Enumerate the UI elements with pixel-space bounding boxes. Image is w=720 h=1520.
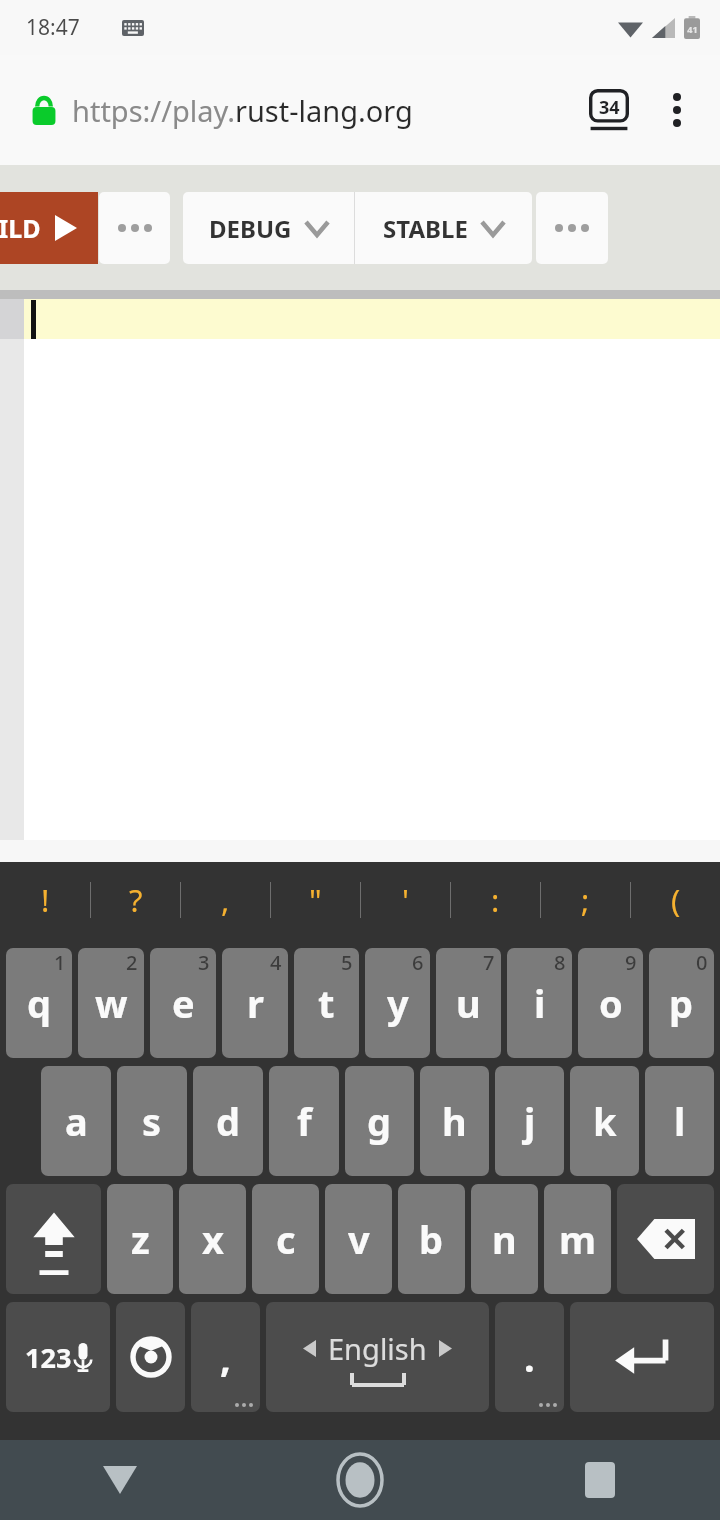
staticText: u bbox=[456, 977, 481, 1029]
button[interactable]: v bbox=[325, 1184, 392, 1294]
staticText: x bbox=[202, 1213, 224, 1265]
staticText: d bbox=[216, 1095, 241, 1147]
staticText: 8 bbox=[554, 949, 566, 976]
button[interactable]: : bbox=[451, 862, 540, 938]
button[interactable]: b bbox=[398, 1184, 465, 1294]
button[interactable]: ' bbox=[361, 862, 450, 938]
button[interactable]: i bbox=[507, 948, 572, 1058]
button[interactable]: g bbox=[345, 1066, 414, 1176]
staticText: 6 bbox=[412, 949, 424, 976]
staticText: e bbox=[172, 977, 195, 1029]
staticText: v bbox=[348, 1213, 370, 1265]
staticText: 7 bbox=[483, 949, 495, 976]
staticText: : bbox=[491, 879, 500, 921]
button[interactable]: Space, English bbox=[266, 1302, 489, 1412]
button[interactable]: z bbox=[107, 1184, 173, 1294]
staticText: . bbox=[524, 1331, 535, 1383]
button[interactable]: h bbox=[420, 1066, 489, 1176]
staticText: 123 bbox=[25, 1339, 72, 1376]
staticText: 4 bbox=[270, 949, 282, 976]
staticText: z bbox=[131, 1213, 150, 1265]
staticText: i bbox=[534, 977, 546, 1029]
staticText: STABLE bbox=[383, 212, 468, 245]
staticText: a bbox=[65, 1095, 88, 1147]
staticText: 9 bbox=[625, 949, 637, 976]
button[interactable]: a bbox=[41, 1066, 111, 1176]
button[interactable]: Emoji bbox=[116, 1302, 185, 1412]
staticText: 18:47 bbox=[26, 13, 80, 42]
staticText: ' bbox=[402, 879, 409, 921]
staticText: g bbox=[367, 1095, 392, 1147]
button[interactable]: Shift bbox=[6, 1184, 101, 1294]
button[interactable]: Numbers and voice input bbox=[6, 1302, 110, 1412]
staticText: https://play.rust-lang.org bbox=[72, 91, 413, 130]
button[interactable]: Hide keyboard bbox=[0, 1440, 240, 1520]
button[interactable]: ; bbox=[541, 862, 630, 938]
button[interactable]: More build settings bbox=[536, 192, 608, 264]
button[interactable]: t bbox=[294, 948, 359, 1058]
staticText: BUILD bbox=[0, 211, 41, 245]
button[interactable]: , bbox=[191, 1302, 260, 1412]
staticText: y bbox=[387, 977, 409, 1029]
button[interactable]: More options bbox=[652, 85, 702, 135]
staticText: 3 bbox=[198, 949, 210, 976]
button[interactable]: ! bbox=[0, 862, 90, 938]
staticText: o bbox=[599, 977, 623, 1029]
button[interactable]: y bbox=[365, 948, 430, 1058]
button[interactable]: Build options bbox=[99, 192, 170, 264]
staticText: 1 bbox=[54, 949, 66, 976]
button[interactable]: Delete bbox=[617, 1184, 714, 1294]
button[interactable]: l bbox=[645, 1066, 714, 1176]
staticText: 41 bbox=[687, 23, 698, 35]
button[interactable]: . bbox=[495, 1302, 564, 1412]
button[interactable]: " bbox=[271, 862, 360, 938]
button[interactable]: Home bbox=[240, 1440, 480, 1520]
button[interactable]: ( bbox=[631, 862, 720, 938]
button[interactable]: c bbox=[252, 1184, 319, 1294]
staticText: p bbox=[669, 977, 694, 1029]
button[interactable]: n bbox=[471, 1184, 538, 1294]
button[interactable]: r bbox=[222, 948, 288, 1058]
button[interactable]: d bbox=[193, 1066, 263, 1176]
button[interactable]: Enter bbox=[570, 1302, 714, 1412]
button[interactable]: p bbox=[649, 948, 714, 1058]
staticText: ( bbox=[671, 879, 681, 921]
staticText: c bbox=[276, 1213, 296, 1265]
button[interactable]: u bbox=[436, 948, 501, 1058]
button[interactable]: 34 open tabs bbox=[586, 87, 632, 133]
button[interactable]: o bbox=[578, 948, 643, 1058]
staticText: English bbox=[328, 1329, 427, 1368]
staticText: s bbox=[142, 1095, 162, 1147]
button[interactable]: w bbox=[78, 948, 144, 1058]
button[interactable]: ? bbox=[91, 862, 180, 938]
staticText: , bbox=[220, 1331, 231, 1383]
button[interactable]: e bbox=[150, 948, 216, 1058]
button[interactable]: s bbox=[117, 1066, 187, 1176]
button[interactable]: j bbox=[495, 1066, 564, 1176]
staticText: ! bbox=[41, 879, 50, 921]
staticText: 2 bbox=[126, 949, 138, 976]
staticText: 34 bbox=[599, 95, 620, 120]
staticText: m bbox=[559, 1213, 597, 1265]
button[interactable]: m bbox=[544, 1184, 611, 1294]
button[interactable]: q bbox=[6, 948, 72, 1058]
staticText: , bbox=[221, 879, 230, 921]
staticText: k bbox=[593, 1095, 617, 1147]
staticText: 0 bbox=[696, 949, 708, 976]
staticText: q bbox=[27, 977, 52, 1029]
staticText: l bbox=[674, 1095, 686, 1147]
staticText: 5 bbox=[341, 949, 353, 976]
button[interactable]: BUILD bbox=[0, 192, 98, 264]
button[interactable]: DEBUG bbox=[183, 192, 354, 264]
staticText: j bbox=[524, 1095, 536, 1147]
button[interactable]: Site information, secure connection bbox=[22, 88, 66, 132]
staticText: t bbox=[318, 977, 335, 1029]
button[interactable]: STABLE bbox=[355, 192, 532, 264]
button[interactable]: x bbox=[179, 1184, 246, 1294]
button[interactable]: k bbox=[570, 1066, 639, 1176]
staticText: f bbox=[297, 1095, 312, 1147]
staticText: h bbox=[442, 1095, 467, 1147]
button[interactable]: , bbox=[181, 862, 270, 938]
button[interactable]: f bbox=[269, 1066, 339, 1176]
button[interactable]: Recent apps bbox=[480, 1440, 720, 1520]
